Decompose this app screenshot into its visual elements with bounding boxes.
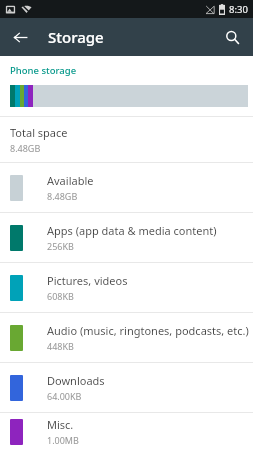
button[interactable]: Available [0, 163, 253, 212]
staticText: Downloads [47, 373, 105, 388]
staticText: Apps (app data & media content) [47, 223, 217, 238]
button[interactable]: Misc. [0, 413, 253, 450]
staticText: 8:30 [229, 3, 248, 16]
staticText: Audio (music, ringtones, podcasts, etc.) [47, 323, 249, 338]
staticText: 448KB [47, 340, 74, 352]
staticText: Pictures, videos [47, 273, 128, 288]
staticText: Available [47, 173, 94, 188]
staticText: Phone storage [10, 64, 77, 77]
staticText: Total space [10, 125, 68, 140]
staticText: 1.00MB [47, 434, 79, 446]
button[interactable]: Audio (music, ringtones, podcasts, etc.) [0, 313, 253, 362]
staticText: Storage [48, 27, 104, 47]
button[interactable]: Total space [0, 117, 253, 162]
staticText: 256KB [47, 240, 74, 252]
button[interactable]: Back [6, 23, 34, 51]
staticText: 608KB [47, 290, 74, 302]
button[interactable]: Search [217, 22, 247, 52]
staticText: 8.48GB [47, 190, 78, 202]
staticText: 8.48GB [10, 142, 41, 154]
button[interactable]: Pictures, videos [0, 263, 253, 312]
button[interactable]: Apps (app data & media content) [0, 213, 253, 262]
staticText: Misc. [47, 417, 74, 432]
staticText: 64.00KB [47, 390, 82, 402]
button[interactable]: Downloads [0, 363, 253, 412]
